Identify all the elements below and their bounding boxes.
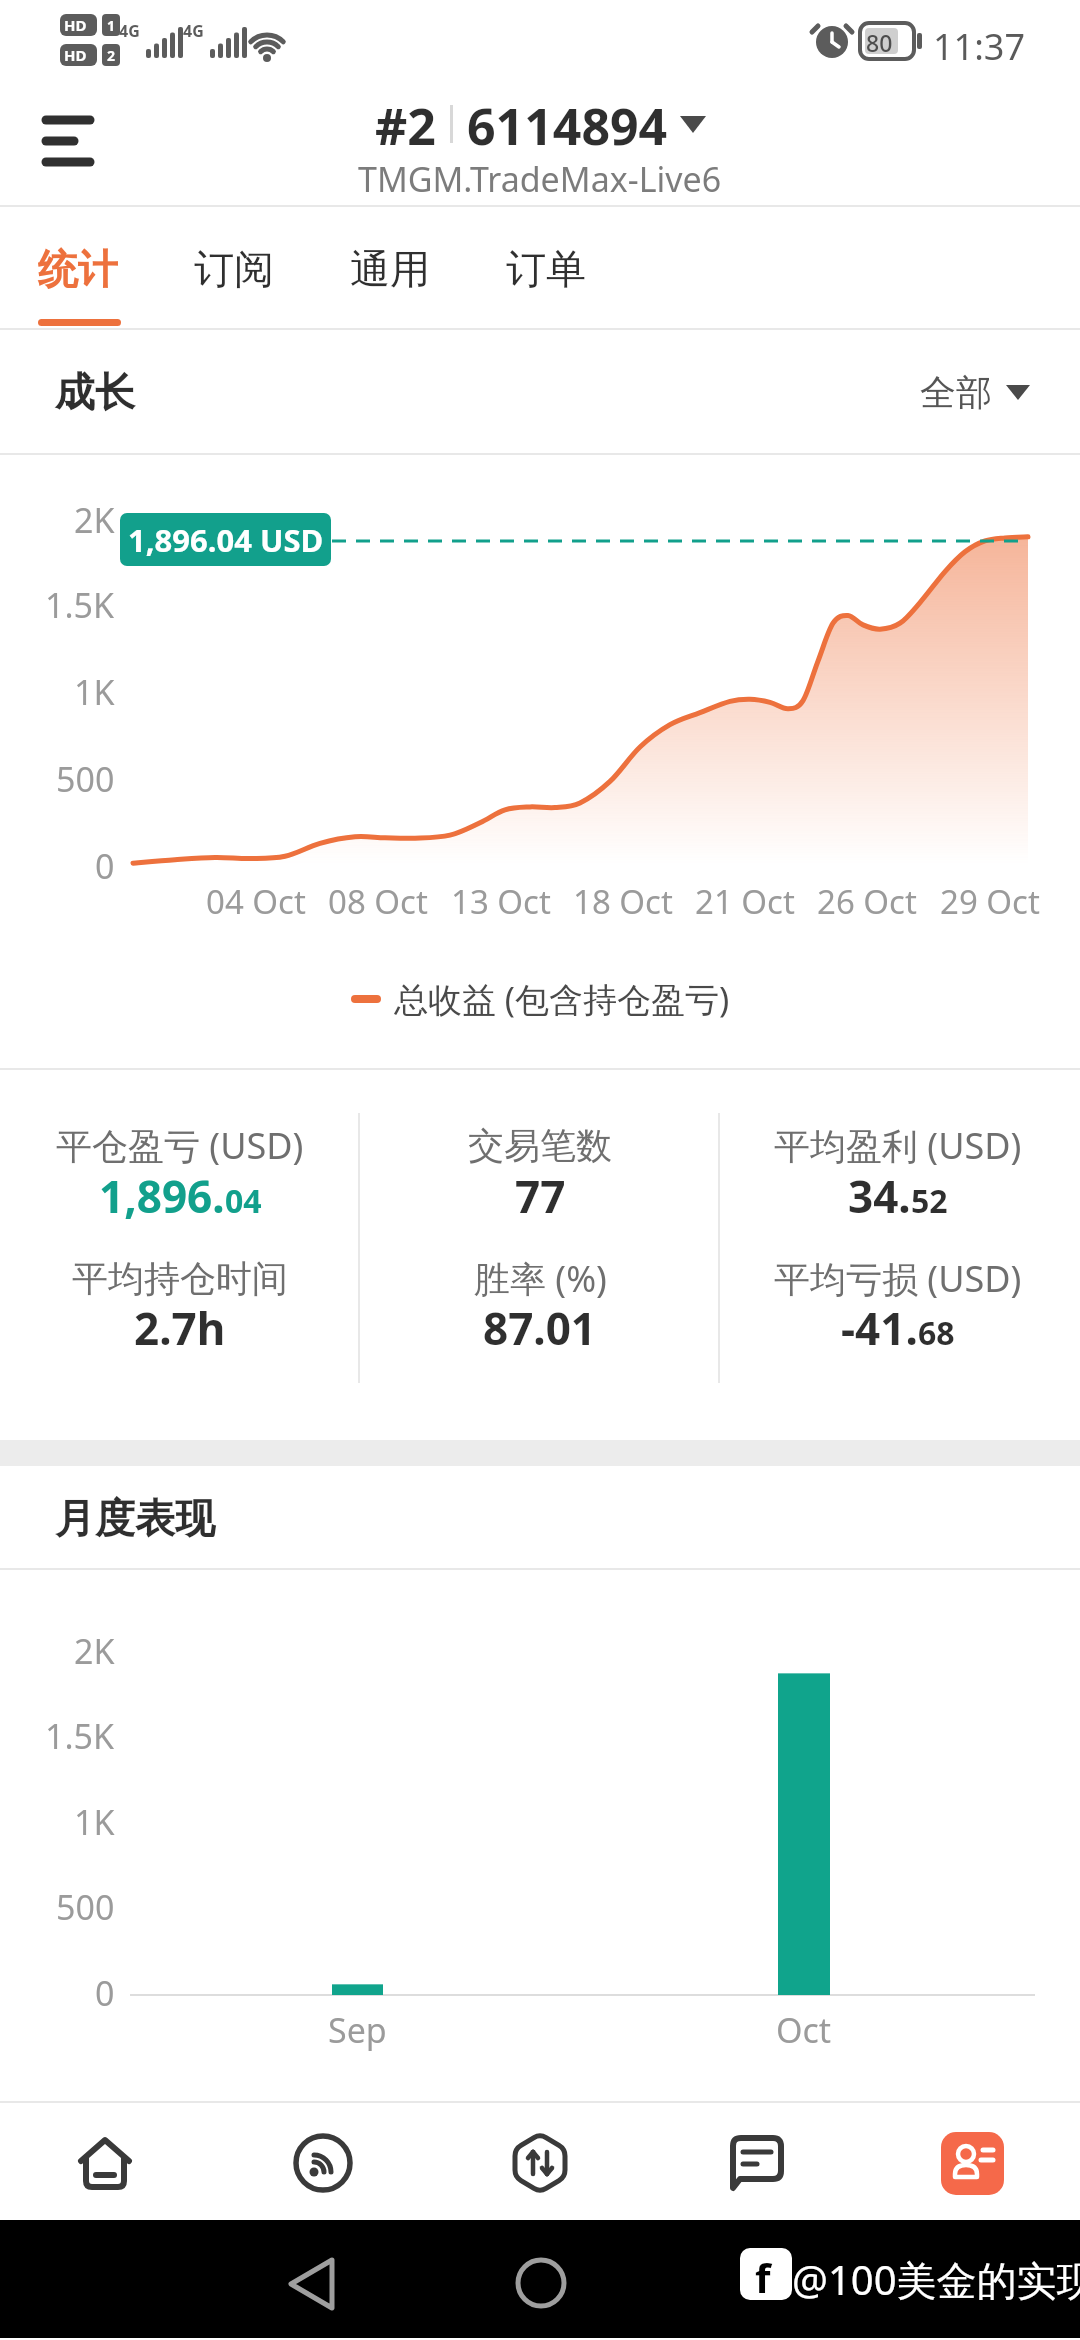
staticText: 1.5K — [45, 582, 115, 628]
staticText: 08 Oct — [328, 879, 428, 923]
staticText: 2.7h — [134, 1298, 226, 1358]
button[interactable]: 87.01 — [483, 1298, 597, 1358]
staticText: 1K — [74, 669, 115, 715]
staticText: 1.5K — [45, 1713, 115, 1759]
staticText: 68 — [918, 1311, 955, 1355]
staticText: 月度表现 — [55, 1493, 215, 1543]
button[interactable]: 77 — [515, 1166, 566, 1226]
staticText: 29 Oct — [940, 879, 1040, 923]
button[interactable]: 通用 — [350, 207, 430, 330]
staticText: 52 — [911, 1179, 948, 1223]
button[interactable] — [60, 2118, 150, 2208]
staticText: 11:37 — [933, 22, 1026, 71]
staticText: 1K — [74, 1799, 115, 1845]
staticText: f — [755, 2250, 771, 2304]
button[interactable] — [278, 2118, 368, 2208]
button[interactable] — [495, 2118, 585, 2208]
staticText: 平仓盈亏 (USD) — [56, 1121, 304, 1169]
staticText: 13 Oct — [451, 879, 551, 923]
staticText: HD — [64, 45, 87, 65]
staticText: #2 — [375, 92, 436, 156]
button[interactable]: 2.7h — [134, 1298, 226, 1358]
staticText: 平均亏损 (USD) — [774, 1254, 1022, 1302]
staticText: @100美金的实现 — [792, 2252, 1080, 2307]
staticText: 0 — [95, 1970, 115, 2016]
staticText: 1 — [107, 16, 116, 35]
staticText: 80 — [866, 27, 893, 58]
staticText: 全部 — [920, 370, 992, 415]
staticText: 1,896. — [99, 1166, 225, 1226]
button[interactable] — [42, 116, 94, 166]
staticText: 订单 — [506, 244, 586, 294]
staticText: 04 — [225, 1179, 262, 1223]
button[interactable]: 订单 — [506, 207, 586, 330]
button[interactable]: 订阅 — [194, 207, 274, 330]
staticText: 0 — [95, 843, 115, 889]
button[interactable]: 34. — [848, 1166, 948, 1226]
button[interactable]: 1,896. — [99, 1166, 262, 1226]
staticText: 1,896.04 USD — [128, 519, 324, 561]
staticText: 18 Oct — [573, 879, 673, 923]
staticText: 500 — [56, 1884, 115, 1930]
staticText: HD — [64, 15, 87, 35]
staticText: -41. — [841, 1298, 918, 1358]
staticText: 26 Oct — [817, 879, 917, 923]
button[interactable]: 统计 — [38, 207, 118, 330]
staticText: 胜率 (%) — [474, 1254, 607, 1302]
staticText: 4G — [119, 20, 140, 42]
staticText: 500 — [56, 756, 115, 802]
staticText: 2K — [74, 497, 115, 543]
staticText: Oct — [776, 2007, 832, 2053]
staticText: 成长 — [55, 367, 135, 417]
staticText: 交易笔数 — [468, 1123, 612, 1168]
button[interactable] — [927, 2118, 1017, 2208]
staticText: 6114894 — [467, 92, 668, 156]
staticText: 平均盈利 (USD) — [774, 1121, 1022, 1169]
button[interactable]: -41. — [841, 1298, 955, 1358]
staticText: TMGM.TradeMax-Live6 — [358, 156, 722, 202]
staticText: Sep — [328, 2007, 387, 2053]
staticText: 2K — [74, 1628, 115, 1674]
staticText: 87.01 — [483, 1298, 597, 1358]
staticText: 21 Oct — [695, 879, 795, 923]
staticText: 平均持仓时间 — [72, 1256, 288, 1301]
staticText: 总收益 (包含持仓盈亏) — [394, 976, 730, 1022]
staticText: 统计 — [38, 244, 118, 294]
staticText: 通用 — [350, 244, 430, 294]
staticText: 2 — [107, 46, 116, 65]
staticText: 77 — [515, 1166, 566, 1226]
staticText: 04 Oct — [206, 879, 306, 923]
button[interactable] — [712, 2118, 802, 2208]
staticText: 34. — [848, 1166, 911, 1226]
button[interactable]: 全部 — [920, 370, 1030, 415]
staticText: 4G — [183, 20, 204, 42]
staticText: 订阅 — [194, 244, 274, 294]
button[interactable]: #2 — [375, 92, 706, 156]
